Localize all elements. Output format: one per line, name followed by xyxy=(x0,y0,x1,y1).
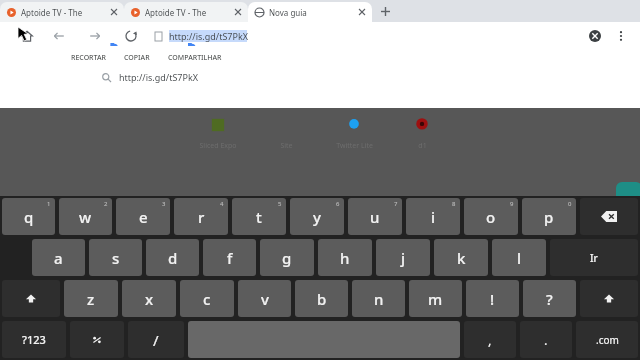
staticText: e xyxy=(139,207,148,227)
staticText: x xyxy=(145,289,154,309)
button[interactable]: Shift xyxy=(2,280,60,317)
staticText: q xyxy=(24,207,34,227)
staticText: j xyxy=(401,248,406,268)
staticText: . xyxy=(544,331,548,349)
staticText: http://is.gd/tS7PkX xyxy=(169,30,249,42)
button[interactable]: k xyxy=(434,239,488,276)
button[interactable]: Back xyxy=(50,27,68,45)
button[interactable]: w xyxy=(59,198,112,235)
button[interactable]: s xyxy=(89,239,142,276)
button[interactable]: Reload xyxy=(122,27,140,45)
staticText: f xyxy=(227,248,233,268)
staticText: ?123 xyxy=(22,332,46,347)
staticText: t xyxy=(256,207,262,227)
button[interactable]: RECORTAR xyxy=(62,46,115,70)
button[interactable]: Shift right xyxy=(580,280,638,317)
staticText: .com xyxy=(596,333,619,347)
button[interactable]: COMPARTILHAR xyxy=(159,46,231,70)
button[interactable]: , xyxy=(464,321,516,358)
button[interactable]: Home xyxy=(18,27,36,45)
button[interactable]: d1 xyxy=(388,114,456,151)
button[interactable]: / xyxy=(128,321,184,358)
button[interactable]: z xyxy=(64,280,118,317)
staticText: l xyxy=(517,248,522,268)
staticText: 2 xyxy=(104,200,108,208)
staticText: 5 xyxy=(278,200,282,208)
button[interactable]: http://is.gd/tS7PkX xyxy=(0,66,640,88)
staticText: o xyxy=(486,207,496,227)
button[interactable]: v xyxy=(238,280,291,317)
button[interactable]: m xyxy=(409,280,462,317)
button[interactable]: c xyxy=(180,280,234,317)
staticText: b xyxy=(317,289,327,309)
button[interactable]: o xyxy=(464,198,518,235)
button[interactable]: b xyxy=(295,280,348,317)
button[interactable]: ! xyxy=(466,280,519,317)
button[interactable]: q xyxy=(2,198,55,235)
button[interactable]: i xyxy=(406,198,460,235)
staticText: 0 xyxy=(568,200,572,208)
button[interactable]: p xyxy=(522,198,576,235)
button[interactable]: x xyxy=(122,280,176,317)
staticText: Aptoide TV - The Optimised xyxy=(21,7,108,18)
button[interactable]: ? xyxy=(523,280,576,317)
button[interactable]: Nova guia xyxy=(248,2,372,22)
button[interactable]: Aptoide TV - The Optimised xyxy=(124,2,248,22)
staticText: COPIAR xyxy=(124,53,150,63)
button[interactable]: r xyxy=(174,198,228,235)
button[interactable]: http://is.gd/tS7PkX xyxy=(154,23,586,49)
button[interactable]: d xyxy=(146,239,199,276)
staticText: Sliced Expo xyxy=(199,141,237,151)
button[interactable]: Forward xyxy=(86,27,104,45)
staticText: 4 xyxy=(220,200,224,208)
staticText: 3 xyxy=(162,200,166,208)
staticText: ? xyxy=(546,289,553,309)
other: Overlay badge xyxy=(616,182,640,208)
button[interactable]: t xyxy=(232,198,286,235)
button[interactable]: j xyxy=(376,239,430,276)
button[interactable]: l xyxy=(492,239,546,276)
button[interactable]: a xyxy=(32,239,85,276)
staticText: g xyxy=(282,248,292,268)
button[interactable]: y xyxy=(290,198,344,235)
button[interactable]: Clear xyxy=(586,27,604,45)
staticText: 1 xyxy=(47,200,51,208)
staticText: s xyxy=(112,248,120,268)
button[interactable]: More options xyxy=(612,27,630,45)
button[interactable]: n xyxy=(352,280,405,317)
staticText: COMPARTILHAR xyxy=(168,53,222,63)
button[interactable]: .com xyxy=(576,321,638,358)
staticText: n xyxy=(374,289,384,309)
staticText: http://is.gd/tS7PkX xyxy=(119,71,199,83)
button[interactable]: u xyxy=(348,198,402,235)
staticText: / xyxy=(153,330,159,350)
staticText: 6 xyxy=(336,200,340,208)
button[interactable]: New tab xyxy=(372,0,398,22)
button[interactable]: Sliced Expo xyxy=(184,114,252,151)
button[interactable]: Ir xyxy=(550,239,638,276)
staticText: z xyxy=(87,289,95,309)
button[interactable]: Backspace xyxy=(580,198,638,235)
button[interactable]: h xyxy=(318,239,372,276)
staticText: 8 xyxy=(452,200,456,208)
staticText: w xyxy=(79,207,92,227)
button[interactable]: g xyxy=(260,239,314,276)
staticText: k xyxy=(457,248,466,268)
button[interactable]: Twitter Lite xyxy=(320,114,388,151)
staticText: Nova guia xyxy=(269,7,356,18)
staticText: c xyxy=(203,289,211,309)
button[interactable]: ?123 xyxy=(2,321,66,358)
staticText: r xyxy=(198,207,205,227)
button[interactable]: e xyxy=(116,198,170,235)
button[interactable]: COPIAR xyxy=(115,46,159,70)
staticText: u xyxy=(370,207,380,227)
staticText: 9 xyxy=(510,200,514,208)
button[interactable]: Keyboard settings xyxy=(70,321,124,358)
staticText: i xyxy=(431,207,436,227)
button[interactable]: Aptoide TV - The Optimised xyxy=(0,2,124,22)
staticText: d xyxy=(168,248,178,268)
button[interactable]: f xyxy=(203,239,256,276)
button[interactable]: . xyxy=(520,321,572,358)
